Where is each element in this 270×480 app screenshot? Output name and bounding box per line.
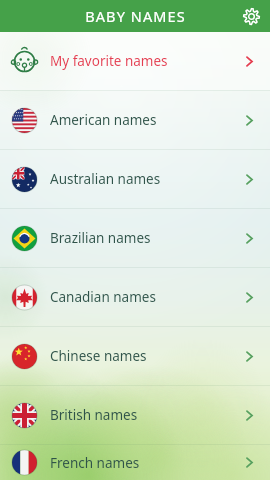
button[interactable]: Brazilian names <box>0 209 270 267</box>
button[interactable]: Chinese names <box>0 327 270 385</box>
staticText: Chinese names <box>50 347 147 365</box>
staticText: British names <box>50 406 138 424</box>
button[interactable]: My favorite names <box>0 32 270 90</box>
button[interactable]: Settings <box>237 2 265 30</box>
button[interactable]: Canadian names <box>0 268 270 326</box>
staticText: BABY NAMES <box>85 6 186 26</box>
staticText: American names <box>50 111 157 129</box>
button[interactable]: Australian names <box>0 150 270 208</box>
button[interactable]: American names <box>0 91 270 149</box>
button[interactable]: French names <box>0 445 270 480</box>
staticText: My favorite names <box>50 52 168 70</box>
staticText: French names <box>50 454 140 472</box>
staticText: Australian names <box>50 170 161 188</box>
staticText: Brazilian names <box>50 229 151 247</box>
button[interactable]: British names <box>0 386 270 444</box>
staticText: Canadian names <box>50 288 156 306</box>
